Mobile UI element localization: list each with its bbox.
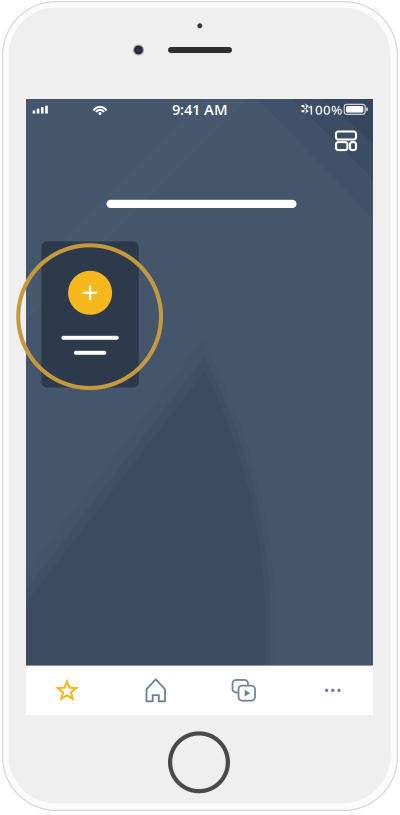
button[interactable]: Library (199, 666, 288, 715)
staticText: 100% (307, 101, 342, 118)
staticText: 9:41 AM (172, 100, 228, 119)
button[interactable]: Change layout (336, 131, 356, 150)
button[interactable]: Home (111, 666, 200, 715)
button[interactable]: Favourites (23, 666, 111, 715)
button[interactable]: More (288, 666, 377, 715)
button[interactable]: Add item (41, 241, 139, 388)
